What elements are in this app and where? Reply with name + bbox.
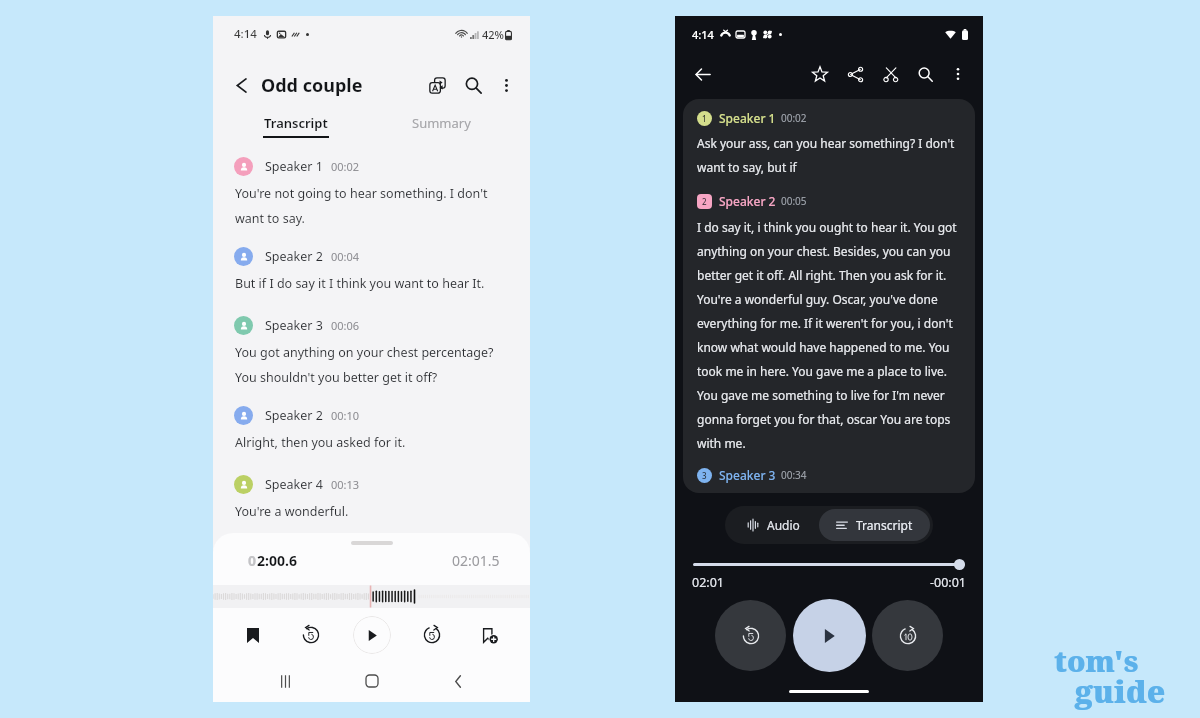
staticText: Alright, then you asked for it. (235, 434, 406, 451)
staticText: -00:01 (930, 574, 966, 591)
staticText: You're a wonderful. (235, 503, 349, 520)
staticText: 00:04 (331, 249, 360, 264)
staticText: But if I do say it I think you want to h… (235, 275, 485, 292)
staticText: Audio (767, 517, 800, 533)
button[interactable]: Translate (422, 70, 452, 100)
staticText: 3 (702, 470, 707, 481)
staticText: 4:14 (234, 26, 257, 42)
staticText: You're not going to hear something. I do… (235, 185, 488, 202)
button[interactable]: Audio (728, 509, 819, 541)
staticText: took me in here. You gave me a place to … (697, 363, 948, 379)
button[interactable]: Share (840, 59, 870, 89)
staticText: You got anything on your chest percentag… (235, 344, 494, 361)
button[interactable]: Speaker 2 (213, 247, 530, 292)
staticText: guide (1075, 670, 1166, 712)
staticText: want to say. (235, 210, 305, 227)
button[interactable]: Summary (400, 112, 483, 134)
staticText: Speaker 1 (719, 110, 776, 126)
staticText: Speaker 2 (265, 248, 323, 265)
button[interactable]: Search (910, 59, 940, 89)
staticText: Speaker 3 (719, 467, 776, 483)
staticText: You're a wonderful guy. Oscar, you've do… (697, 291, 938, 307)
button[interactable]: Speaker 2 (213, 406, 530, 451)
button[interactable]: Speaker 1 (213, 157, 530, 227)
staticText: 00:34 (781, 468, 807, 482)
staticText: 00:13 (331, 477, 360, 492)
button[interactable]: Bookmark (236, 618, 270, 652)
staticText: 0 (248, 551, 257, 570)
staticText: Transcript (856, 517, 913, 533)
staticText: gonna forget you for that, oscar You are… (697, 411, 951, 427)
staticText: with me. (697, 435, 746, 451)
staticText: Ask your ass, can you hear something? I … (697, 135, 955, 151)
staticText: I do say it, i think you ought to hear i… (697, 219, 957, 235)
button[interactable]: Add bookmark (473, 618, 507, 652)
button[interactable]: More options (943, 59, 973, 89)
button[interactable]: Speaker 3 (213, 316, 530, 386)
staticText: You shouldn't you better get it off? (235, 369, 438, 386)
button[interactable]: Back (687, 59, 717, 89)
staticText: 2 (702, 196, 707, 207)
staticText: tom's (1054, 641, 1139, 680)
staticText: 00:10 (331, 408, 360, 423)
button[interactable]: Play (353, 616, 391, 654)
staticText: anything on your chest. Besides, you can… (697, 243, 951, 259)
staticText: Speaker 1 (265, 158, 323, 175)
button[interactable]: Forward 5 seconds (415, 618, 449, 652)
button[interactable]: Transcript (251, 112, 341, 140)
staticText: 4:14 (692, 27, 714, 42)
button[interactable]: Trim (875, 59, 905, 89)
button[interactable]: Home (357, 666, 387, 696)
staticText: 00:05 (781, 194, 807, 208)
button[interactable]: Back (226, 70, 256, 100)
button[interactable]: Search (458, 70, 488, 100)
staticText: 2:00.6 (257, 551, 297, 570)
button[interactable]: Rewind 5 seconds (715, 600, 786, 671)
button[interactable]: Recents (270, 666, 300, 696)
staticText: Summary (412, 114, 471, 132)
staticText: Speaker 2 (265, 407, 323, 424)
staticText: Odd couple (261, 73, 363, 98)
staticText: everything for me. If it weren't for you… (697, 315, 953, 331)
button[interactable]: Back (443, 666, 473, 696)
button[interactable]: Rewind 5 seconds (294, 618, 328, 652)
staticText: 00:02 (331, 159, 360, 174)
staticText: want to say, but if (697, 159, 797, 175)
staticText: Speaker 3 (265, 317, 323, 334)
staticText: Transcript (264, 114, 328, 132)
button[interactable]: Speaker 4 (213, 475, 530, 520)
staticText: 42% (482, 27, 504, 42)
staticText: 1 (702, 113, 707, 124)
button[interactable]: Favorite (805, 59, 835, 89)
staticText: 00:06 (331, 318, 360, 333)
button[interactable]: Forward 10 seconds (872, 600, 943, 671)
button[interactable]: Transcript (819, 509, 930, 541)
staticText: better get it off. All right. Then you a… (697, 267, 947, 283)
button[interactable]: Play (793, 599, 866, 672)
staticText: Speaker 2 (719, 193, 776, 209)
staticText: 00:02 (781, 111, 807, 125)
button[interactable]: More options (491, 70, 521, 100)
staticText: You gave me something to live for I'm ne… (697, 387, 945, 403)
staticText: 02:01 (692, 574, 724, 591)
staticText: 02:01.5 (452, 551, 500, 570)
staticText: Speaker 4 (265, 476, 323, 493)
staticText: know what would have happened to me. You (697, 339, 950, 355)
